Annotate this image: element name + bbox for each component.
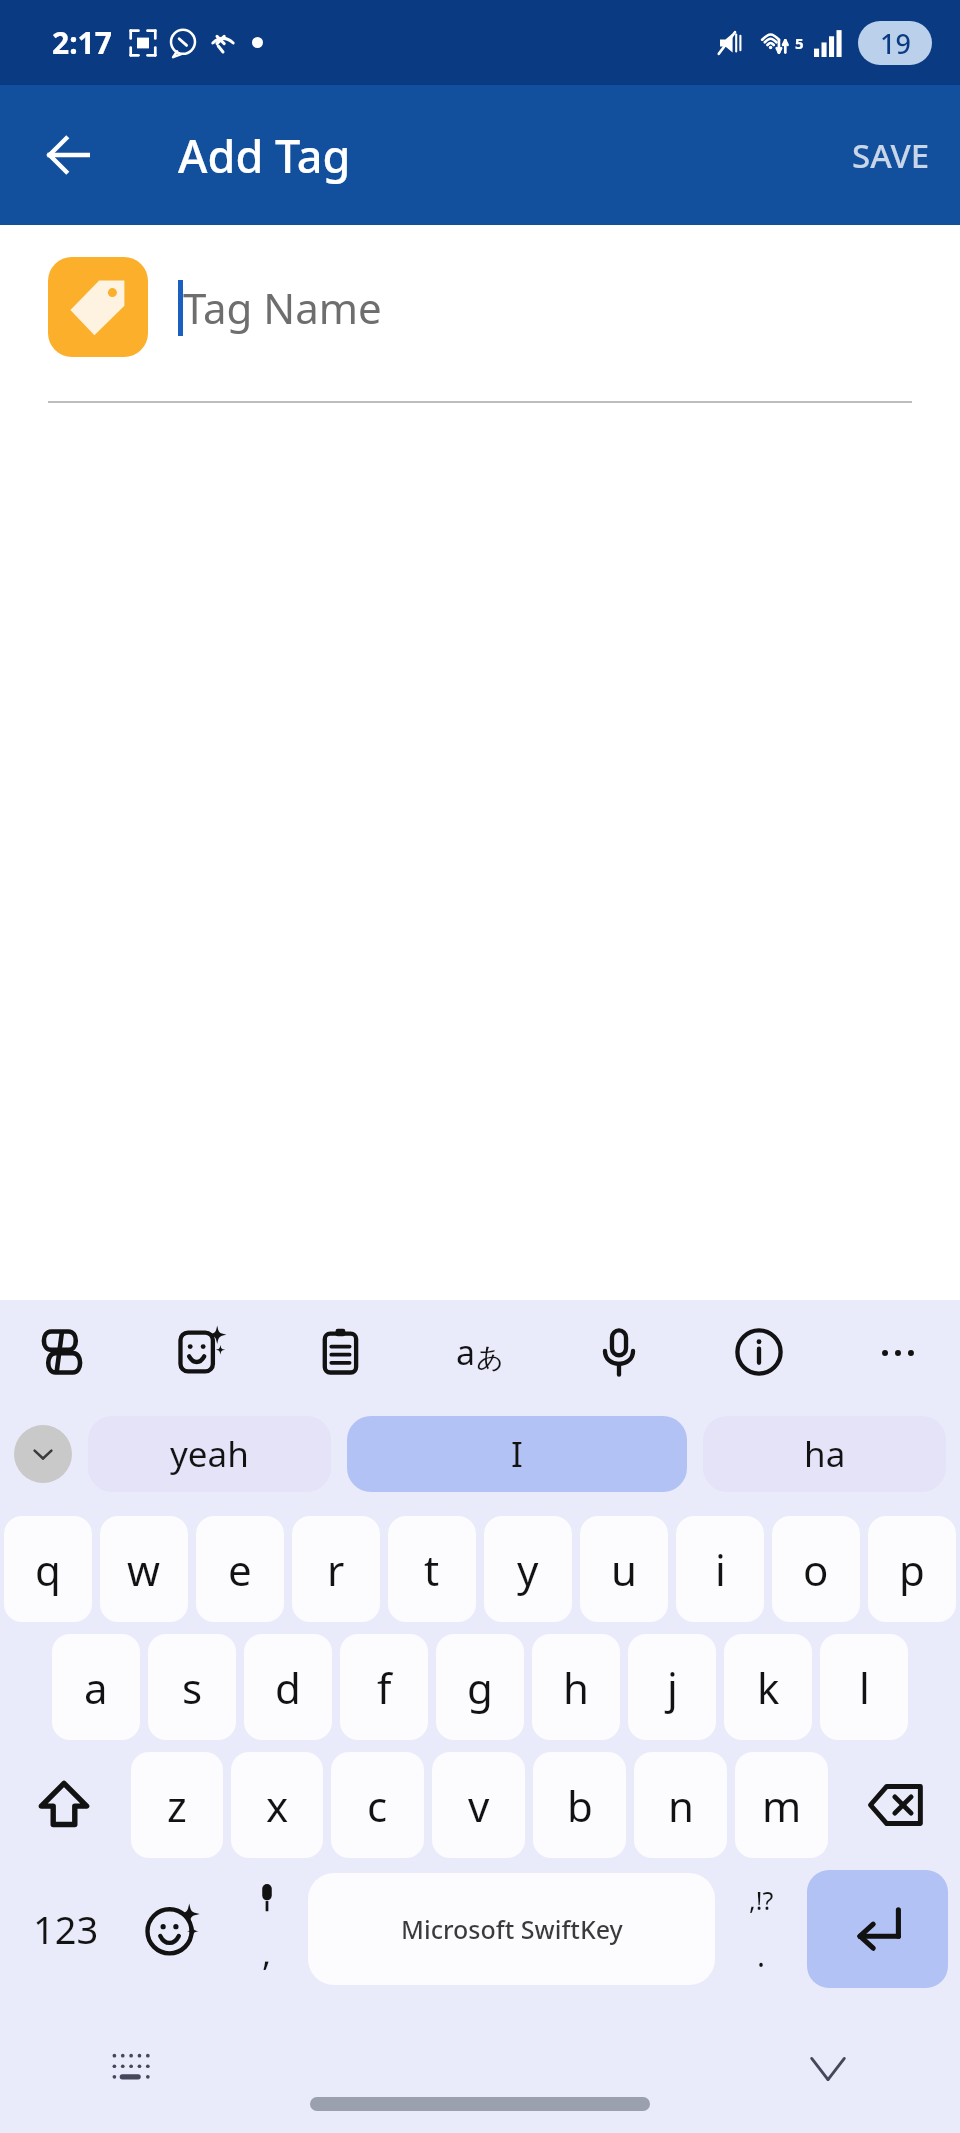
button[interactable]: Keyboard layout xyxy=(100,2036,164,2100)
staticText: 19 xyxy=(880,25,911,62)
staticText: s xyxy=(182,1659,203,1716)
staticText: Microsoft SwiftKey xyxy=(401,1912,623,1946)
staticText: ,!? xyxy=(749,1883,774,1917)
button[interactable]: g xyxy=(436,1634,524,1740)
button[interactable]: m xyxy=(735,1752,828,1858)
staticText: e xyxy=(228,1541,252,1598)
staticText: 123 xyxy=(33,1903,99,1955)
button[interactable]: h xyxy=(532,1634,620,1740)
staticText: SAVE xyxy=(852,133,930,178)
button[interactable]: a xyxy=(448,1320,512,1384)
staticText: yeah xyxy=(170,1430,249,1478)
button[interactable]: Emoji xyxy=(119,1864,226,1994)
staticText: t xyxy=(424,1541,440,1598)
button[interactable]: o xyxy=(772,1516,860,1622)
button[interactable]: Info xyxy=(727,1320,791,1384)
staticText: 2:17 xyxy=(52,22,112,63)
button[interactable]: Back xyxy=(30,117,106,193)
staticText: q xyxy=(35,1541,61,1598)
button[interactable]: y xyxy=(484,1516,572,1622)
button[interactable]: Punctuation xyxy=(715,1864,807,1994)
staticText: 5 xyxy=(795,33,804,53)
button[interactable]: Expand suggestions xyxy=(14,1425,72,1483)
button[interactable]: k xyxy=(724,1634,812,1740)
button[interactable]: ha xyxy=(703,1416,946,1492)
staticText: a xyxy=(84,1659,108,1716)
staticText: p xyxy=(899,1541,925,1598)
button[interactable]: Shift xyxy=(4,1746,123,1864)
button[interactable]: 123 xyxy=(12,1864,119,1994)
button[interactable]: l xyxy=(820,1634,908,1740)
button[interactable]: v xyxy=(432,1752,525,1858)
button[interactable]: a xyxy=(52,1634,140,1740)
button[interactable]: s xyxy=(148,1634,236,1740)
staticText: z xyxy=(167,1777,187,1834)
button[interactable]: p xyxy=(868,1516,956,1622)
staticText: x xyxy=(266,1777,289,1834)
button[interactable]: Hide keyboard xyxy=(796,2036,860,2100)
staticText: f xyxy=(377,1659,392,1716)
button[interactable]: n xyxy=(634,1752,727,1858)
staticText: w xyxy=(127,1541,161,1598)
button[interactable]: Space xyxy=(308,1873,715,1985)
staticText: あ xyxy=(476,1341,504,1375)
button[interactable]: q xyxy=(4,1516,92,1622)
button[interactable]: r xyxy=(292,1516,380,1622)
staticText: i xyxy=(715,1541,726,1598)
staticText: m xyxy=(762,1777,802,1834)
staticText: g xyxy=(467,1659,493,1716)
staticText: h xyxy=(563,1659,589,1716)
staticText: j xyxy=(667,1659,678,1716)
staticText: Tag Name xyxy=(183,279,382,336)
button[interactable]: I xyxy=(347,1416,687,1492)
staticText: r xyxy=(327,1541,345,1598)
button[interactable]: Microphone and comma xyxy=(226,1864,308,1994)
staticText: l xyxy=(859,1659,870,1716)
staticText: , xyxy=(262,1930,272,1976)
button[interactable]: x xyxy=(231,1752,323,1858)
staticText: n xyxy=(668,1777,694,1834)
staticText: b xyxy=(567,1777,593,1834)
button[interactable]: Clipboard xyxy=(309,1320,373,1384)
button[interactable]: u xyxy=(580,1516,668,1622)
button[interactable]: d xyxy=(244,1634,332,1740)
staticText: u xyxy=(611,1541,637,1598)
button[interactable]: e xyxy=(196,1516,284,1622)
staticText: . xyxy=(757,1935,766,1976)
button[interactable]: j xyxy=(628,1634,716,1740)
staticText: k xyxy=(757,1659,780,1716)
staticText: y xyxy=(517,1541,539,1598)
button[interactable]: Enter xyxy=(807,1870,948,1988)
staticText: c xyxy=(367,1777,388,1834)
staticText: I xyxy=(511,1430,523,1478)
staticText: o xyxy=(803,1541,829,1598)
button[interactable]: t xyxy=(388,1516,476,1622)
button[interactable]: i xyxy=(676,1516,764,1622)
button[interactable]: b xyxy=(533,1752,626,1858)
button[interactable]: Stickers xyxy=(169,1320,233,1384)
staticText: ha xyxy=(804,1430,846,1478)
staticText: Add Tag xyxy=(178,125,351,186)
button[interactable]: SwiftKey xyxy=(30,1320,94,1384)
button[interactable]: w xyxy=(100,1516,188,1622)
staticText: a xyxy=(456,1329,476,1375)
button[interactable]: c xyxy=(331,1752,424,1858)
button[interactable]: SAVE xyxy=(822,111,960,200)
button[interactable]: z xyxy=(131,1752,223,1858)
staticText: d xyxy=(275,1659,301,1716)
staticText: v xyxy=(468,1777,490,1834)
button[interactable]: Tag icon xyxy=(48,257,148,357)
button[interactable]: f xyxy=(340,1634,428,1740)
button[interactable]: Backspace xyxy=(836,1746,956,1864)
button[interactable]: yeah xyxy=(88,1416,331,1492)
button[interactable]: Voice input xyxy=(587,1320,651,1384)
button[interactable]: More options xyxy=(866,1320,930,1384)
